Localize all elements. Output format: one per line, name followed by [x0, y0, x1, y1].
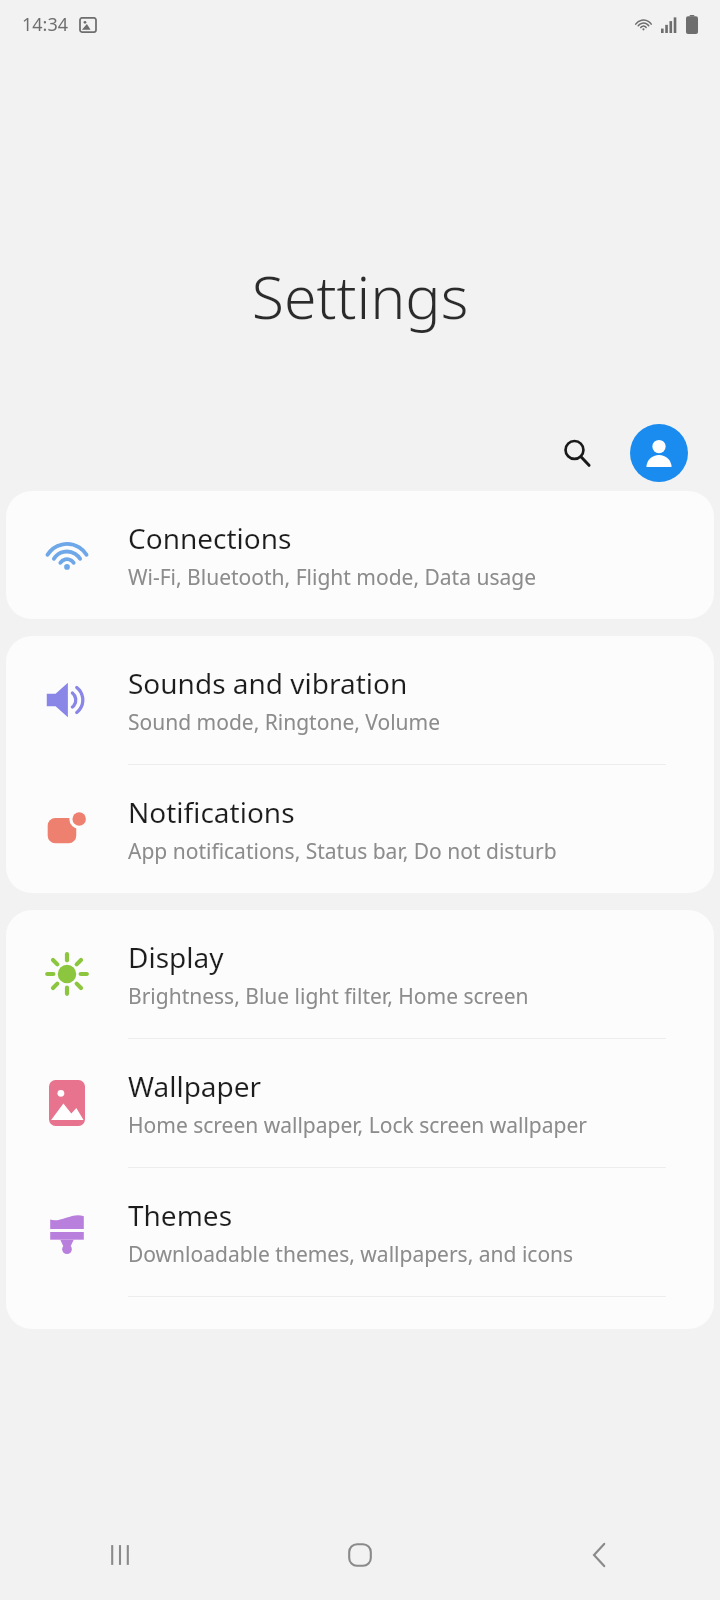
staticText: Connections	[128, 519, 292, 557]
staticText: App notifications, Status bar, Do not di…	[128, 837, 557, 866]
button[interactable]: Themes	[6, 1168, 714, 1296]
staticText: Settings	[0, 256, 720, 336]
staticText: Display	[128, 938, 224, 976]
button[interactable]: Connections	[6, 491, 714, 619]
button[interactable]: Back	[480, 1510, 720, 1600]
button[interactable]: Search	[548, 424, 606, 482]
staticText: 14:34	[22, 12, 69, 37]
staticText: Downloadable themes, wallpapers, and ico…	[128, 1240, 574, 1269]
button[interactable]: Wallpaper	[6, 1039, 714, 1167]
button[interactable]: Sounds and vibration	[6, 636, 714, 764]
staticText: Home screen wallpaper, Lock screen wallp…	[128, 1111, 587, 1140]
staticText: Wi-Fi, Bluetooth, Flight mode, Data usag…	[128, 563, 537, 592]
button[interactable]: Recents	[0, 1510, 240, 1600]
button[interactable]: Home	[240, 1510, 480, 1600]
staticText: Sounds and vibration	[128, 664, 408, 702]
button[interactable]: Notifications	[6, 765, 714, 893]
staticText: Themes	[128, 1196, 233, 1234]
button[interactable]: Display	[6, 910, 714, 1038]
staticText: Brightness, Blue light filter, Home scre…	[128, 982, 529, 1011]
staticText: Sound mode, Ringtone, Volume	[128, 708, 441, 737]
button[interactable]: Account	[630, 424, 688, 482]
staticText: Wallpaper	[128, 1067, 262, 1105]
staticText: Notifications	[128, 793, 295, 831]
